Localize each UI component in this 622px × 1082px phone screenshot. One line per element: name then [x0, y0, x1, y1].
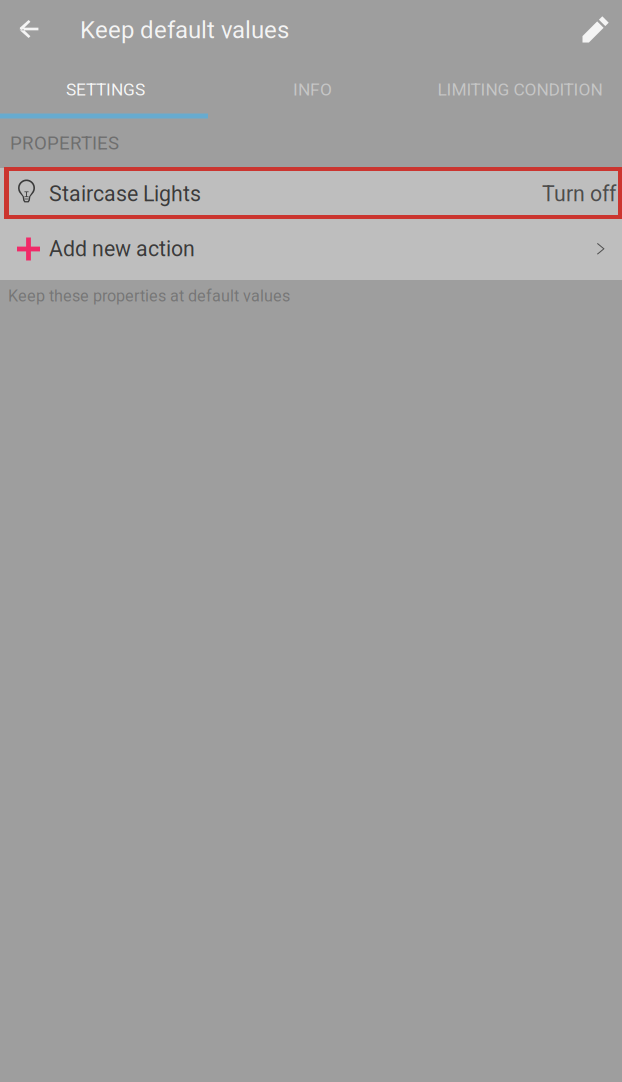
button[interactable]: Add new action	[0, 220, 622, 280]
staticText: Turn off	[542, 181, 616, 206]
staticText: Staircase Lights	[49, 181, 201, 206]
button[interactable]: SETTINGS	[2, 60, 209, 118]
staticText: INFO	[293, 79, 332, 100]
button[interactable]: Back	[0, 0, 60, 58]
staticText: Keep default values	[80, 16, 289, 44]
button[interactable]: LIMITING CONDITION	[416, 60, 622, 118]
staticText: PROPERTIES	[10, 132, 119, 154]
staticText: SETTINGS	[66, 79, 145, 100]
staticText: Keep these properties at default values	[8, 286, 290, 305]
staticText: LIMITING CONDITION	[437, 79, 602, 100]
button[interactable]: Staircase Lights	[0, 168, 622, 220]
button[interactable]: INFO	[209, 60, 416, 118]
staticText: Add new action	[49, 236, 195, 261]
button[interactable]: Edit	[568, 0, 622, 58]
